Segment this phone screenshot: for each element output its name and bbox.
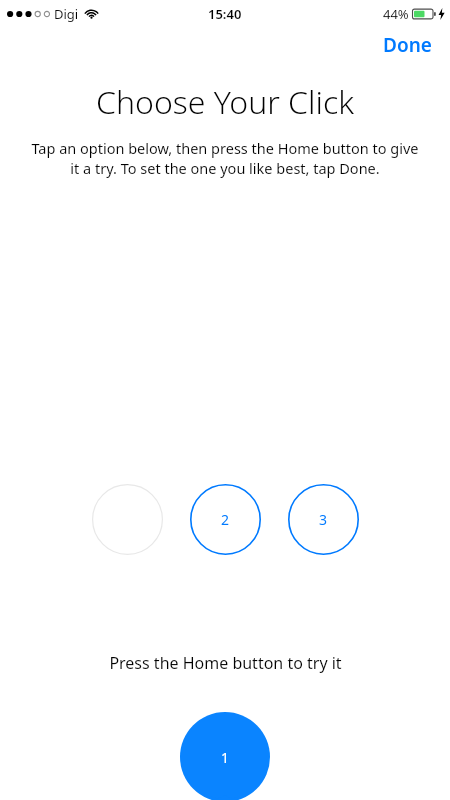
button[interactable]: Click option 1 preview	[179, 712, 271, 800]
staticText: 44%	[383, 5, 409, 23]
staticText: Choose Your Click	[96, 80, 354, 124]
staticText: Tap an option below, then press the Home…	[26, 138, 424, 178]
button[interactable]: Click option 3	[288, 484, 359, 555]
staticText: Digi	[54, 5, 79, 23]
staticText: 2	[221, 510, 230, 529]
staticText: Done	[383, 32, 432, 58]
button[interactable]: Click option 2	[190, 484, 261, 555]
button[interactable]: Click option 1	[92, 484, 163, 555]
button[interactable]: Done	[379, 30, 436, 60]
staticText: 15:40	[208, 5, 242, 23]
staticText: 3	[319, 510, 328, 529]
staticText: 1	[221, 748, 230, 766]
staticText: Press the Home button to try it	[109, 652, 342, 674]
